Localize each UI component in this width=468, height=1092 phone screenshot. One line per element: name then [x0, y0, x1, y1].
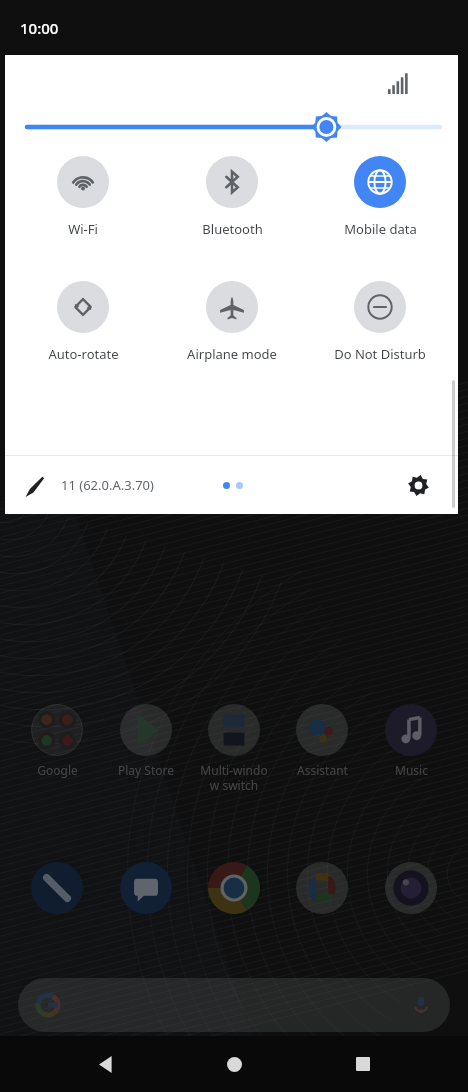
- button[interactable]: Home: [210, 1040, 258, 1088]
- button[interactable]: Auto-rotate: [13, 281, 153, 363]
- button[interactable]: Play Store: [107, 704, 185, 778]
- staticText: Music: [395, 762, 428, 778]
- button[interactable]: [18, 862, 96, 914]
- staticText: Assistant: [297, 762, 348, 778]
- button[interactable]: Wi-Fi: [13, 156, 153, 238]
- staticText: Auto-rotate: [48, 345, 119, 363]
- staticText: 10:00: [20, 18, 59, 38]
- button[interactable]: Mobile data: [310, 156, 450, 238]
- button[interactable]: Music: [372, 704, 450, 778]
- button[interactable]: Settings: [398, 465, 438, 505]
- button[interactable]: [18, 978, 450, 1032]
- button[interactable]: Multi-windo w switch: [195, 704, 273, 793]
- button[interactable]: Do Not Disturb: [310, 281, 450, 363]
- button[interactable]: Assistant: [283, 704, 361, 778]
- button[interactable]: Brightness: [5, 110, 458, 144]
- staticText: Bluetooth: [202, 220, 263, 238]
- button[interactable]: Google: [18, 704, 96, 778]
- staticText: Google: [37, 762, 78, 778]
- button[interactable]: Bluetooth: [162, 156, 302, 238]
- button[interactable]: Airplane mode: [162, 281, 302, 363]
- button[interactable]: Edit: [17, 465, 57, 505]
- button[interactable]: Back: [81, 1040, 129, 1088]
- staticText: 11 (62.0.A.3.70): [61, 476, 154, 494]
- button[interactable]: [107, 862, 185, 914]
- staticText: Play Store: [118, 762, 174, 778]
- staticText: Do Not Disturb: [334, 345, 426, 363]
- staticText: Airplane mode: [187, 345, 277, 363]
- staticText: Multi-windo w switch: [200, 762, 268, 793]
- staticText: Wi-Fi: [68, 220, 98, 238]
- other: Signal strength: [388, 72, 410, 94]
- button[interactable]: [283, 862, 361, 914]
- button[interactable]: [372, 862, 450, 914]
- button[interactable]: [195, 862, 273, 914]
- button[interactable]: Recents: [339, 1040, 387, 1088]
- staticText: Mobile data: [344, 220, 417, 238]
